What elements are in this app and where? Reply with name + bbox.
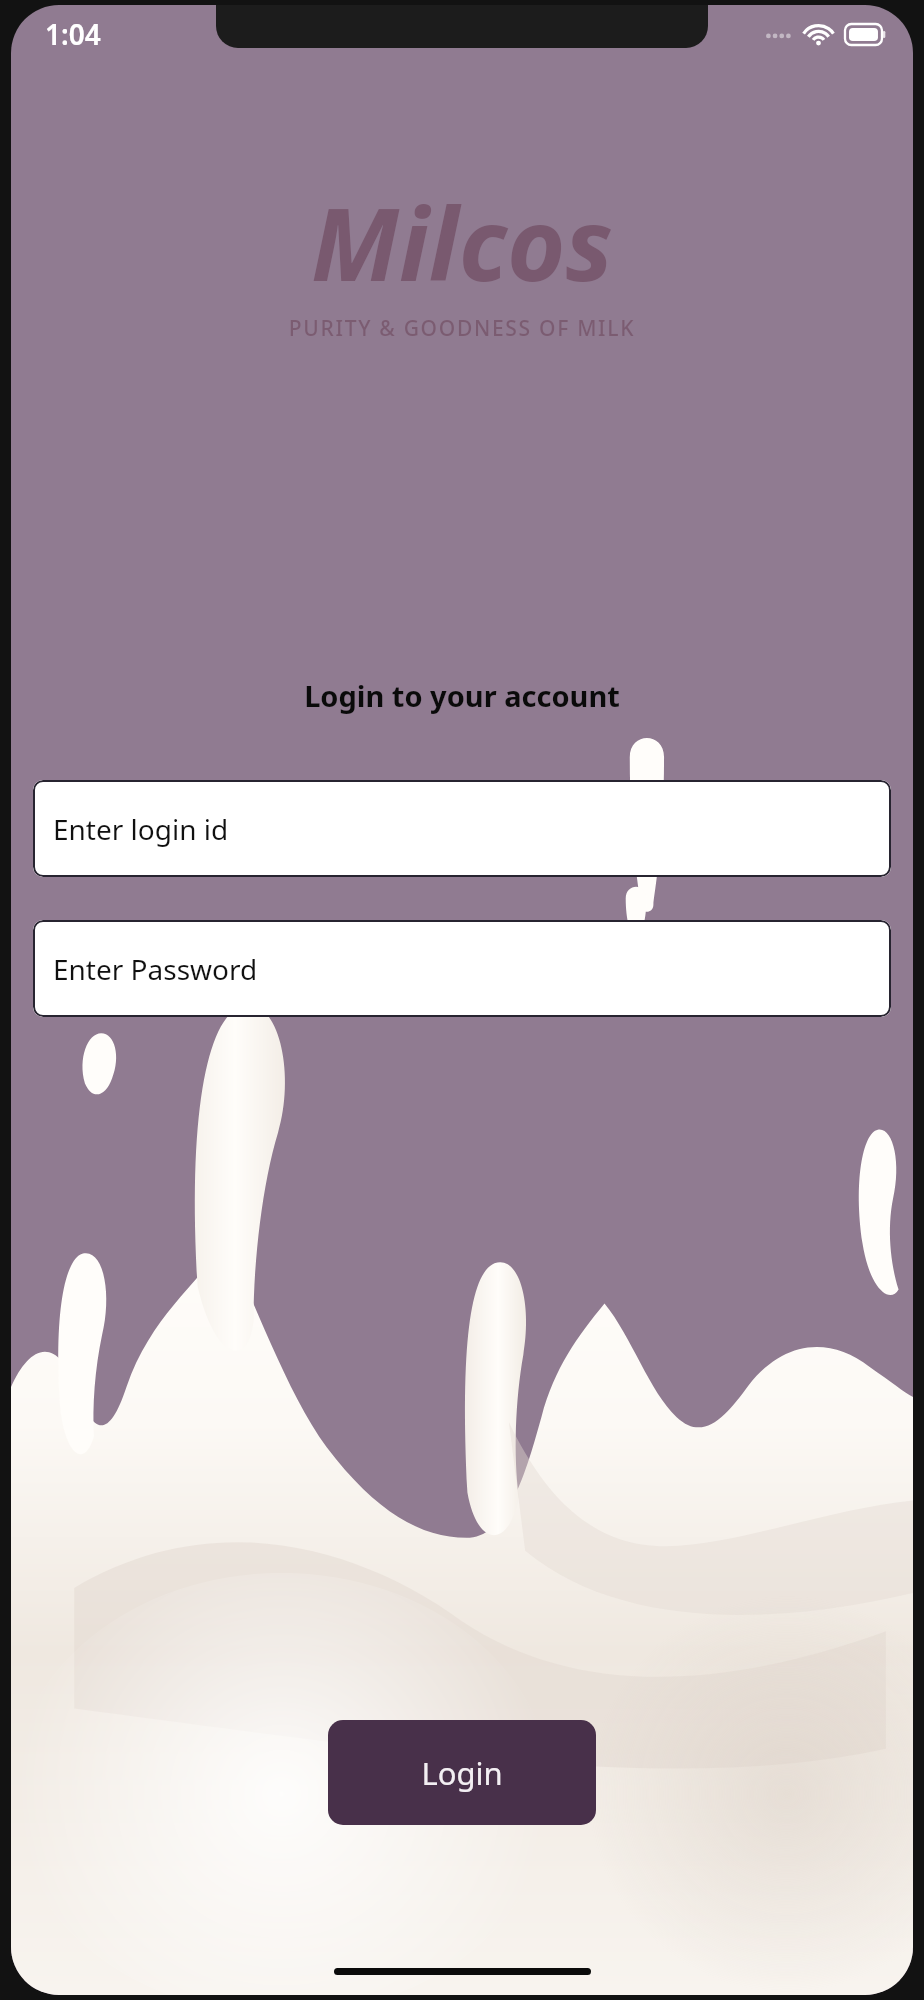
other: Wi-Fi [803,22,834,46]
button[interactable]: Login [328,1720,596,1825]
staticText: 1:04 [45,15,101,53]
button[interactable]: Enter Password [33,920,891,1017]
staticText: Enter Password [53,950,258,988]
staticText: Milcos [11,174,913,310]
staticText: Enter login id [53,810,229,848]
staticText: Login [421,1752,503,1794]
staticText: Login to your account [11,676,913,715]
other: Cellular signal [764,26,792,42]
other: Battery [845,24,887,45]
button[interactable]: Enter login id [33,780,891,877]
staticText: PURITY & GOODNESS OF MILK [11,314,913,343]
